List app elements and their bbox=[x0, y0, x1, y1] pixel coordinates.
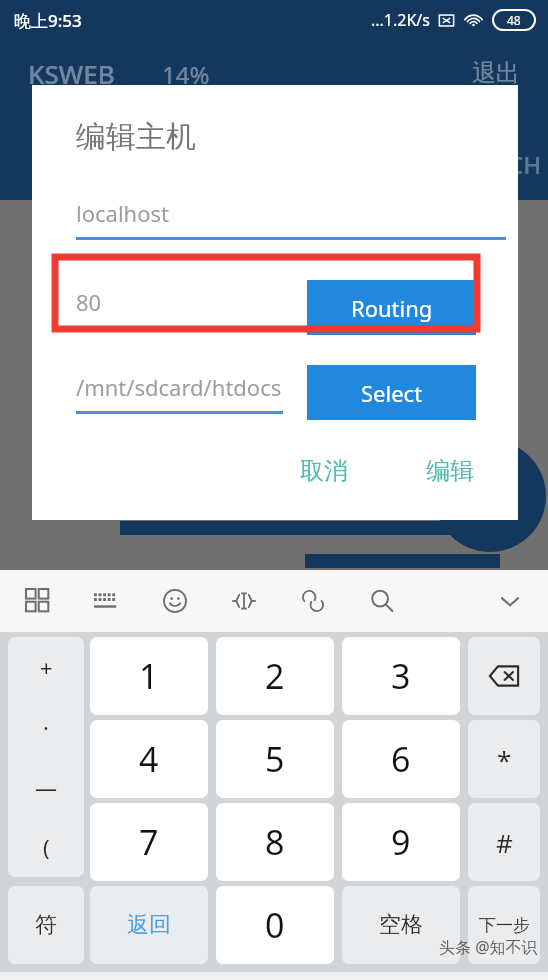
button[interactable]: 5 bbox=[216, 720, 334, 798]
staticText: 编辑主机 bbox=[76, 118, 196, 156]
staticText: 返回 bbox=[127, 911, 171, 939]
button[interactable]: 9 bbox=[342, 803, 460, 881]
staticText: 3 bbox=[391, 653, 411, 699]
button[interactable]: Emoji bbox=[155, 581, 195, 621]
staticText: ...1.2K/s bbox=[371, 9, 430, 31]
button[interactable]: 符 bbox=[8, 886, 84, 964]
staticText: 0 bbox=[265, 902, 285, 948]
button[interactable]: # bbox=[468, 803, 540, 881]
staticText: Select bbox=[361, 378, 423, 408]
staticText: ( bbox=[43, 832, 50, 862]
button[interactable]: Keyboard bbox=[86, 581, 126, 621]
button[interactable]: localhost bbox=[76, 198, 506, 240]
staticText: 6 bbox=[391, 736, 411, 782]
staticText: — bbox=[35, 772, 58, 802]
button[interactable]: Search bbox=[362, 581, 402, 621]
button[interactable]: Backspace bbox=[468, 637, 540, 715]
button[interactable]: 下一步 bbox=[468, 886, 540, 964]
staticText: 4 bbox=[139, 736, 159, 782]
button[interactable]: * bbox=[468, 720, 540, 798]
staticText: 符 bbox=[35, 911, 57, 939]
button[interactable]: 4 bbox=[90, 720, 208, 798]
staticText: 编辑 bbox=[426, 456, 474, 486]
button[interactable]: 2 bbox=[216, 637, 334, 715]
staticText: · bbox=[43, 712, 49, 742]
button[interactable]: 8 bbox=[216, 803, 334, 881]
staticText: KSWEB bbox=[28, 56, 115, 91]
staticText: 9 bbox=[391, 819, 411, 865]
staticText: 空格 bbox=[379, 911, 423, 939]
button[interactable]: 编辑 bbox=[416, 448, 484, 494]
staticText: 48 bbox=[507, 12, 521, 28]
button[interactable]: Routing bbox=[307, 280, 476, 335]
staticText: 1 bbox=[139, 653, 159, 699]
button[interactable]: 80 bbox=[76, 287, 283, 329]
button[interactable]: Symbols column bbox=[8, 637, 84, 877]
button[interactable]: 7 bbox=[90, 803, 208, 881]
button[interactable]: 空格 bbox=[342, 886, 460, 964]
button[interactable]: Select bbox=[307, 365, 476, 420]
staticText: /mnt/sdcard/htdocs bbox=[76, 372, 282, 402]
staticText: 14% bbox=[162, 58, 210, 91]
staticText: 80 bbox=[76, 287, 102, 317]
staticText: CH bbox=[508, 148, 542, 181]
staticText: localhost bbox=[76, 198, 169, 228]
staticText: Routing bbox=[351, 293, 433, 323]
staticText: 下一步 bbox=[479, 915, 530, 936]
staticText: + bbox=[40, 652, 53, 682]
staticText: 取消 bbox=[300, 456, 348, 486]
button[interactable]: Clipboard bbox=[293, 581, 333, 621]
button[interactable]: 6 bbox=[342, 720, 460, 798]
button[interactable]: 3 bbox=[342, 637, 460, 715]
button[interactable]: 0 bbox=[216, 886, 334, 964]
button[interactable]: Move cursor bbox=[224, 581, 264, 621]
staticText: # bbox=[496, 825, 513, 860]
staticText: 2 bbox=[265, 653, 285, 699]
staticText: 7 bbox=[139, 819, 159, 865]
button[interactable]: /mnt/sdcard/htdocs bbox=[76, 372, 283, 414]
button[interactable]: 取消 bbox=[290, 448, 358, 494]
staticText: * bbox=[497, 742, 512, 777]
staticText: 头条 @知不识 bbox=[439, 936, 538, 958]
button[interactable]: Hide keyboard bbox=[490, 581, 530, 621]
button[interactable]: Symbols bbox=[18, 581, 58, 621]
staticText: 晚上9:53 bbox=[14, 9, 82, 32]
staticText: 退出 bbox=[472, 58, 520, 88]
staticText: 5 bbox=[265, 736, 285, 782]
button[interactable]: 1 bbox=[90, 637, 208, 715]
staticText: 8 bbox=[265, 819, 285, 865]
button[interactable]: 返回 bbox=[90, 886, 208, 964]
